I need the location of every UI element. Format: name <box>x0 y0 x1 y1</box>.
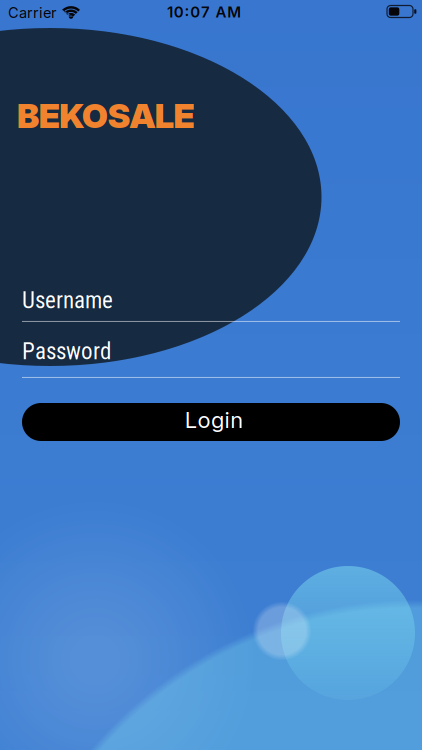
button[interactable]: Username <box>22 287 400 322</box>
staticText: BEKOSALE <box>17 95 194 136</box>
staticText: Carrier <box>8 4 56 22</box>
staticText: Login <box>185 407 243 433</box>
staticText: 10:07 AM <box>167 3 241 21</box>
button[interactable]: Login <box>22 403 400 441</box>
staticText: Username <box>22 287 113 314</box>
button[interactable]: Password <box>22 338 400 378</box>
staticText: Password <box>22 338 111 365</box>
